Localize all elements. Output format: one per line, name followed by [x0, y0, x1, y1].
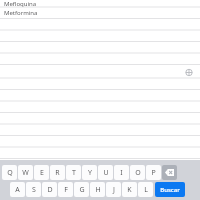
- staticText: H: [95, 185, 101, 195]
- staticText: S: [32, 185, 36, 195]
- button[interactable]: H: [90, 182, 105, 197]
- button[interactable]: T: [66, 165, 81, 180]
- button[interactable]: O: [130, 165, 145, 180]
- button[interactable]: E: [34, 165, 49, 180]
- staticText: W: [22, 168, 29, 178]
- staticText: Q: [7, 168, 13, 178]
- staticText: J: [113, 185, 115, 195]
- staticText: R: [55, 168, 60, 178]
- staticText: D: [47, 185, 53, 195]
- staticText: Buscar: [160, 186, 180, 194]
- button[interactable]: Buscar: [155, 182, 185, 197]
- staticText: F: [64, 185, 68, 195]
- button[interactable]: [0, 101, 200, 113]
- button[interactable]: S: [26, 182, 41, 197]
- button[interactable]: [0, 90, 200, 102]
- staticText: Y: [88, 168, 92, 178]
- button[interactable]: I: [114, 165, 129, 180]
- button[interactable]: W: [18, 165, 33, 180]
- button[interactable]: [0, 124, 200, 136]
- button[interactable]: [0, 19, 200, 31]
- button[interactable]: [0, 42, 200, 54]
- staticText: L: [144, 185, 148, 195]
- button[interactable]: D: [42, 182, 57, 197]
- staticText: T: [72, 168, 76, 178]
- button[interactable]: L: [138, 182, 153, 197]
- button[interactable]: [0, 113, 200, 125]
- button[interactable]: R: [50, 165, 65, 180]
- button[interactable]: Y: [82, 165, 97, 180]
- button[interactable]: Metformina: [0, 7, 200, 19]
- staticText: K: [127, 185, 132, 195]
- staticText: G: [79, 185, 85, 195]
- button[interactable]: [0, 65, 200, 79]
- button[interactable]: U: [98, 165, 113, 180]
- button[interactable]: [0, 30, 200, 42]
- button[interactable]: [0, 53, 200, 65]
- button[interactable]: A: [10, 182, 25, 197]
- button[interactable]: K: [122, 182, 137, 197]
- staticText: E: [40, 168, 44, 178]
- staticText: Metformina: [4, 9, 38, 17]
- button[interactable]: Q: [2, 165, 17, 180]
- button[interactable]: P: [146, 165, 161, 180]
- button[interactable]: J: [106, 182, 121, 197]
- staticText: I: [120, 168, 123, 178]
- button[interactable]: F: [58, 182, 73, 197]
- staticText: Mefloquina: [4, 0, 37, 7]
- button[interactable]: Mefloquina: [0, 0, 200, 7]
- button[interactable]: [0, 147, 200, 159]
- button[interactable]: [0, 136, 200, 148]
- staticText: U: [103, 168, 109, 178]
- staticText: O: [135, 168, 141, 178]
- button[interactable]: Backspace: [162, 165, 177, 180]
- button[interactable]: G: [74, 182, 89, 197]
- button[interactable]: [0, 78, 200, 90]
- staticText: A: [15, 185, 20, 195]
- staticText: P: [151, 168, 156, 178]
